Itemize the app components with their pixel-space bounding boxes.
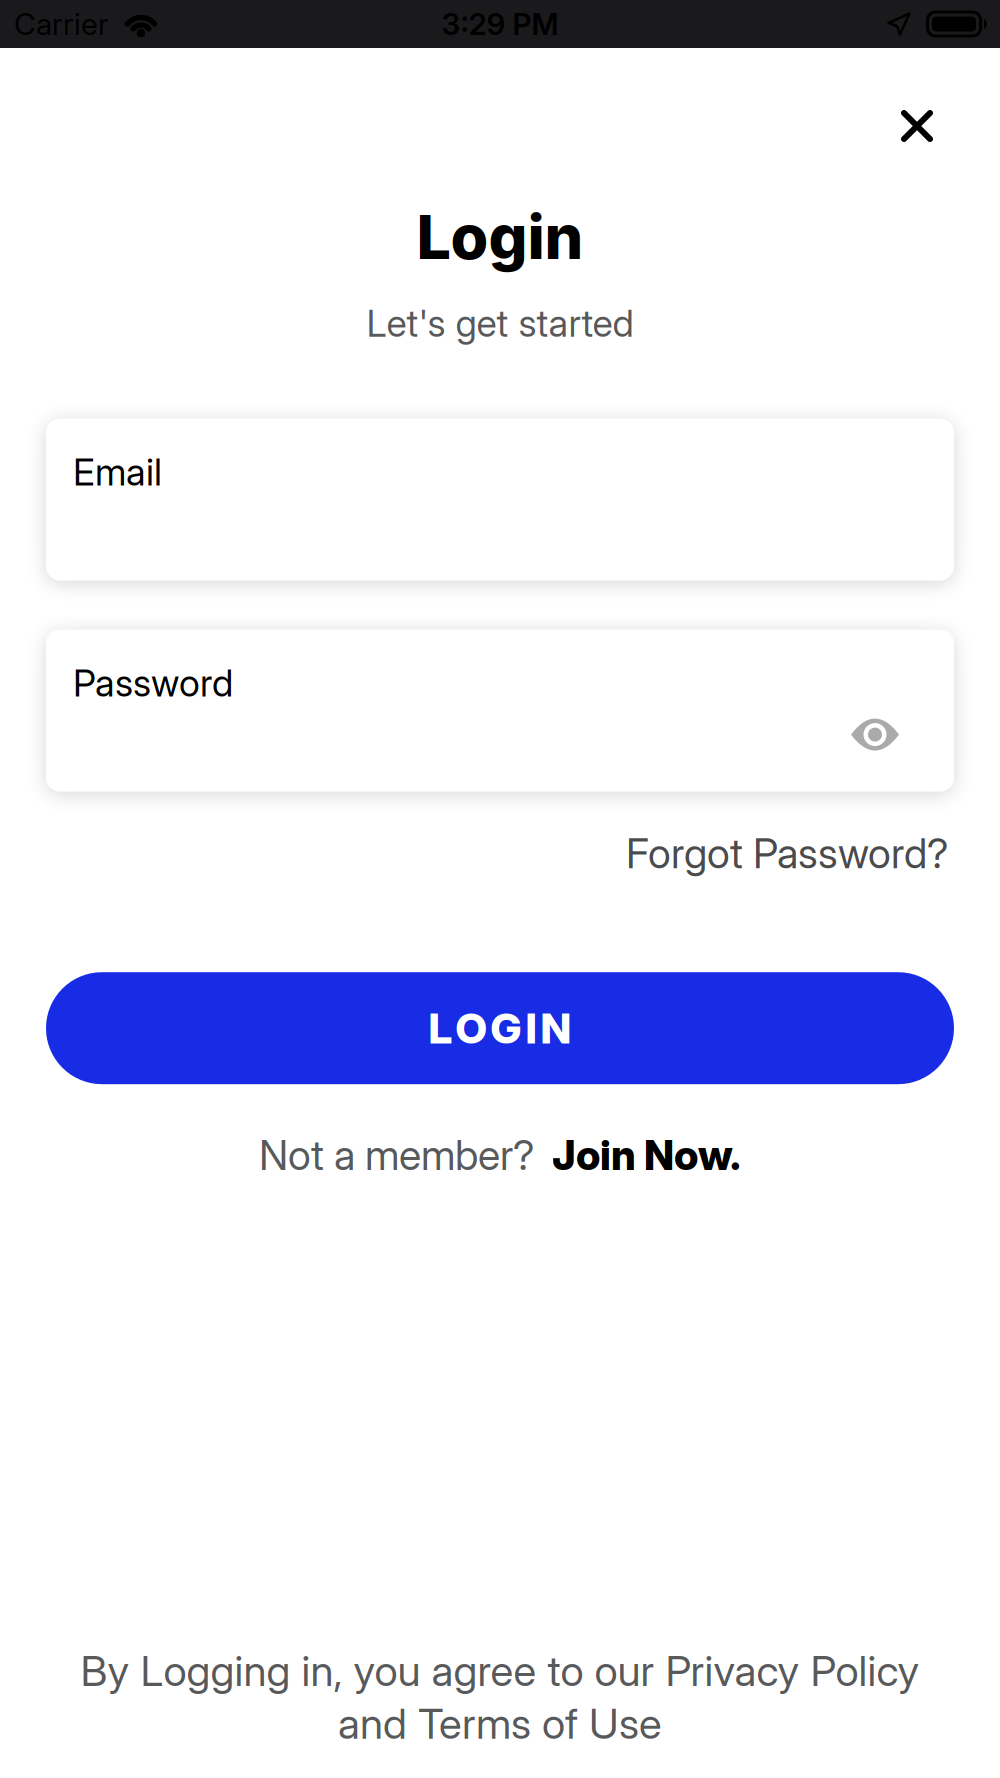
staticText: Password	[73, 661, 233, 705]
button[interactable]: Forgot Password?	[626, 829, 948, 878]
staticText: Login	[416, 200, 583, 274]
staticText: By Logging in, you agree to our Privacy …	[80, 1645, 919, 1696]
staticText: Email	[73, 450, 162, 494]
staticText: Carrier	[14, 6, 109, 42]
button[interactable]: Join Now.	[552, 1130, 741, 1180]
button[interactable]: Password	[46, 630, 954, 792]
staticText: Let's get started	[366, 301, 633, 346]
staticText: Forgot Password?	[626, 829, 948, 878]
button[interactable]: Close	[901, 48, 1000, 142]
staticText: 3:29 PM	[441, 6, 558, 42]
staticText: LOGIN	[428, 1003, 571, 1054]
button[interactable]: Show password	[851, 719, 954, 792]
staticText: and Terms of Use	[338, 1698, 662, 1749]
staticText: Join Now.	[552, 1130, 741, 1180]
button[interactable]: Email	[46, 419, 954, 581]
staticText: Not a member?	[259, 1130, 534, 1180]
button[interactable]: LOGIN	[46, 972, 954, 1084]
